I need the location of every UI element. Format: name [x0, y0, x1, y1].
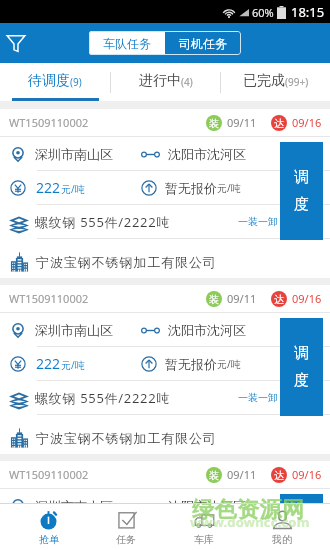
staticText: 抢单 — [39, 533, 59, 546]
staticText: 沈阳市沈河区 — [168, 322, 246, 338]
button[interactable]: Filter — [0, 27, 32, 59]
staticText: 60% — [252, 5, 274, 20]
button[interactable]: 进行中 — [111, 63, 220, 101]
button[interactable]: 我的 — [243, 504, 321, 550]
staticText: WT1509110002 — [9, 467, 89, 482]
staticText: 达 — [274, 469, 284, 482]
staticText: 深圳市南山区 — [35, 322, 113, 338]
button[interactable]: 调 — [280, 142, 323, 240]
staticText: 09/11 — [227, 115, 257, 130]
staticText: 暂无报价 — [165, 356, 217, 372]
staticText: 调 — [294, 168, 309, 187]
staticText: 18:15 — [291, 3, 325, 21]
button[interactable]: 抢单 — [10, 504, 87, 550]
staticText: (4) — [181, 75, 193, 89]
staticText: 绿色资源网 — [192, 496, 305, 524]
staticText: 度 — [294, 371, 309, 390]
button[interactable]: 调 — [280, 318, 323, 416]
staticText: WT1509110002 — [9, 291, 89, 306]
staticText: 宁波宝钢不锈钢加工有限公司 — [36, 254, 217, 270]
staticText: 螺纹钢 555件/2222吨 — [35, 213, 171, 231]
staticText: 深圳市南山区 — [35, 146, 113, 162]
staticText: 车队任务 — [103, 36, 151, 51]
staticText: 09/16 — [292, 467, 322, 482]
staticText: www.downcc.com — [190, 513, 310, 531]
staticText: 元/吨 — [217, 357, 241, 371]
staticText: 装 — [209, 117, 219, 130]
staticText: 沈阳市沈河区 — [168, 146, 246, 162]
staticText: 09/11 — [227, 291, 257, 306]
staticText: 09/16 — [292, 115, 322, 130]
staticText: 任务 — [116, 533, 136, 546]
staticText: 深圳市南山区 — [35, 498, 113, 514]
staticText: 进行中 — [139, 72, 181, 90]
staticText: 222 — [36, 178, 61, 197]
button[interactable]: 车队任务 — [89, 31, 165, 55]
staticText: 元/吨 — [61, 182, 85, 196]
staticText: 宁波宝钢不锈钢加工有限公司 — [36, 430, 217, 446]
staticText: 装 — [209, 293, 219, 306]
staticText: 达 — [274, 117, 284, 130]
staticText: 222 — [36, 354, 61, 373]
staticText: 222 — [36, 527, 61, 546]
button[interactable]: 调 — [280, 494, 323, 550]
staticText: 一装一卸 — [238, 215, 278, 228]
staticText: 元/吨 — [61, 358, 85, 372]
staticText: 达 — [274, 293, 284, 306]
staticText: 09/16 — [292, 291, 322, 306]
staticText: 已完成 — [243, 72, 285, 90]
staticText: (9) — [70, 75, 82, 89]
staticText: 待调度 — [28, 72, 70, 90]
staticText: 装 — [209, 469, 219, 482]
staticText: (99+) — [285, 75, 309, 89]
staticText: 09/11 — [227, 467, 257, 482]
staticText: 调 — [294, 344, 309, 363]
staticText: 度 — [294, 195, 309, 214]
staticText: 元/吨 — [217, 181, 241, 195]
staticText: 沈阳市沈河区 — [168, 498, 246, 514]
staticText: 暂无报价 — [165, 529, 217, 545]
staticText: WT1509110002 — [9, 115, 89, 130]
staticText: 车库 — [194, 533, 214, 546]
button[interactable]: 已完成 — [221, 63, 330, 101]
staticText: 我的 — [272, 533, 292, 546]
staticText: 调 — [294, 516, 309, 535]
staticText: 司机任务 — [179, 36, 227, 51]
staticText: 暂无报价 — [165, 180, 217, 196]
button[interactable]: 司机任务 — [165, 31, 241, 55]
button[interactable]: 待调度 — [0, 63, 110, 101]
staticText: 螺纹钢 555件/2222吨 — [35, 389, 171, 407]
staticText: 一装一卸 — [238, 391, 278, 404]
button[interactable]: 任务 — [87, 504, 165, 550]
button[interactable]: 车库 — [165, 504, 243, 550]
